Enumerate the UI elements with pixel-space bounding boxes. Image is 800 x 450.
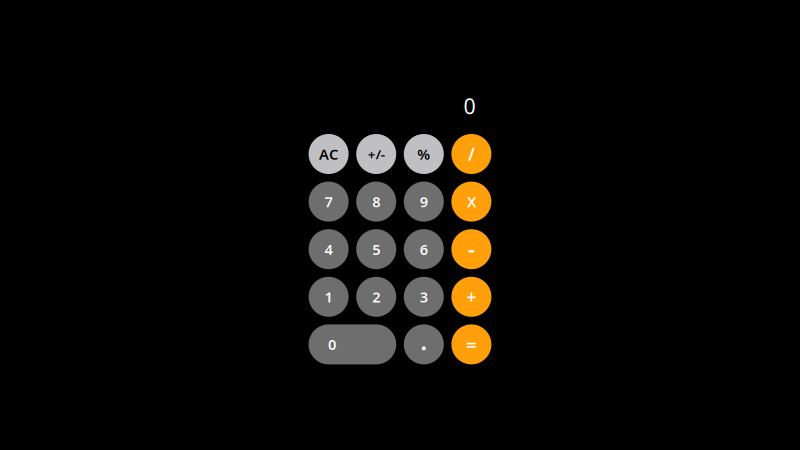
button[interactable]: 4 bbox=[309, 229, 349, 269]
staticText: - bbox=[468, 235, 475, 263]
staticText: 4 bbox=[325, 239, 333, 259]
staticText: 3 bbox=[420, 287, 428, 307]
button[interactable]: 9 bbox=[404, 182, 444, 222]
button[interactable]: Divide bbox=[451, 134, 491, 174]
staticText: 9 bbox=[420, 192, 428, 211]
button[interactable]: 7 bbox=[309, 182, 349, 222]
staticText: 0 bbox=[328, 335, 336, 354]
staticText: % bbox=[417, 144, 430, 164]
staticText: 0 bbox=[463, 92, 475, 120]
button[interactable]: 5 bbox=[356, 229, 396, 269]
button[interactable]: 6 bbox=[404, 229, 444, 269]
staticText: / bbox=[468, 142, 475, 165]
staticText: 6 bbox=[420, 239, 428, 259]
button[interactable]: Multiply bbox=[451, 182, 491, 222]
button[interactable]: Toggle sign bbox=[356, 134, 396, 174]
staticText: +/- bbox=[368, 145, 385, 163]
button[interactable]: All clear bbox=[309, 134, 349, 174]
button[interactable]: 0 bbox=[309, 324, 396, 364]
staticText: AC bbox=[319, 144, 338, 164]
staticText: 7 bbox=[325, 192, 333, 211]
button[interactable]: 8 bbox=[356, 182, 396, 222]
button[interactable]: 1 bbox=[309, 277, 349, 317]
staticText: 8 bbox=[372, 192, 380, 211]
staticText: 2 bbox=[372, 287, 380, 307]
staticText: = bbox=[466, 332, 477, 357]
button[interactable]: Subtract bbox=[451, 229, 491, 269]
button[interactable]: 3 bbox=[404, 277, 444, 317]
button[interactable]: Add bbox=[451, 277, 491, 317]
staticText: + bbox=[466, 285, 476, 308]
button[interactable]: Percent bbox=[404, 134, 444, 174]
staticText: 1 bbox=[325, 287, 333, 307]
button[interactable]: Decimal point bbox=[404, 324, 444, 364]
button[interactable]: 2 bbox=[356, 277, 396, 317]
staticText: X bbox=[467, 192, 476, 211]
button[interactable]: Equals bbox=[451, 324, 491, 364]
staticText: 5 bbox=[372, 239, 380, 259]
